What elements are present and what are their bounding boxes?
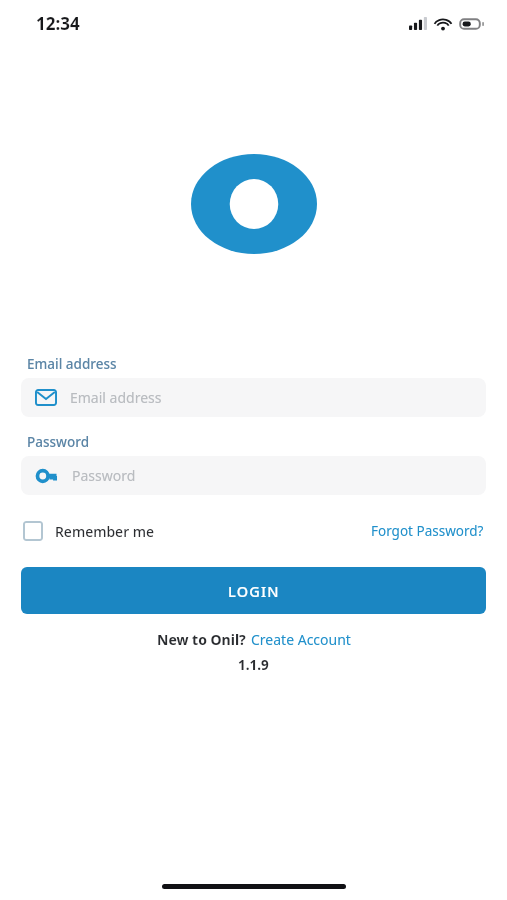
other: Password	[35, 468, 59, 484]
staticText: Remember me	[55, 522, 155, 541]
staticText: Email address	[27, 355, 117, 373]
button[interactable]: Create Account	[251, 630, 351, 649]
button[interactable]: Email	[21, 378, 486, 417]
other: Email	[35, 389, 57, 406]
button[interactable]: Remember me	[21, 517, 157, 545]
button[interactable]: LOGIN	[21, 567, 486, 614]
staticText: New to Onil?	[157, 630, 246, 649]
staticText: LOGIN	[228, 581, 280, 601]
staticText: Password	[72, 466, 136, 485]
staticText: 1.1.9	[238, 656, 269, 674]
button[interactable]: Password	[21, 456, 486, 495]
staticText: Email address	[70, 388, 162, 407]
staticText: Forgot Password?	[371, 522, 484, 540]
staticText: 12:34	[36, 12, 80, 35]
staticText: Password	[27, 433, 90, 451]
button[interactable]: Forgot Password?	[369, 518, 486, 544]
staticText: Create Account	[251, 630, 351, 649]
